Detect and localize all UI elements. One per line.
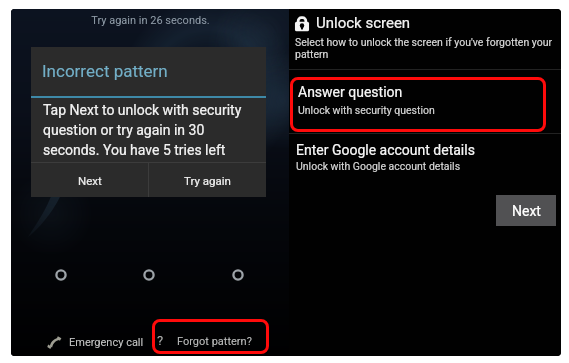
- staticText: Unlock with Google account details: [296, 160, 461, 172]
- button[interactable]: Try again: [149, 163, 266, 197]
- button[interactable]: [289, 135, 561, 175]
- button[interactable]: [290, 77, 546, 132]
- staticText: Answer question: [298, 84, 403, 100]
- button[interactable]: Next: [31, 163, 148, 197]
- staticText: Unlock screen: [316, 14, 411, 32]
- staticText: Select how to unlock the screen if you'v…: [295, 36, 557, 60]
- staticText: Unlock with security question: [298, 104, 435, 116]
- staticText: Incorrect pattern: [42, 61, 168, 81]
- staticText: Forgot pattern?: [177, 335, 252, 348]
- staticText: Try again in 26 seconds.: [91, 14, 210, 27]
- button[interactable]: Next: [496, 195, 556, 226]
- staticText: Next: [78, 174, 102, 187]
- staticText: Emergency call: [69, 336, 144, 349]
- other: Emergency call: [47, 335, 62, 350]
- staticText: Tap Next to unlock with security questio…: [43, 102, 251, 158]
- button[interactable]: Emergency call: [47, 331, 144, 353]
- staticText: Enter Google account details: [296, 142, 475, 158]
- button[interactable]: [152, 319, 269, 354]
- staticText: Try again: [184, 174, 231, 187]
- staticText: ?: [157, 333, 164, 348]
- staticText: Next: [512, 203, 541, 219]
